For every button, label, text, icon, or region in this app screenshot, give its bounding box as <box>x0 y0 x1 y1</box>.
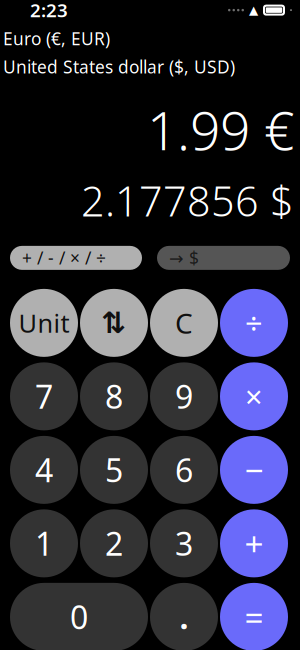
staticText: ▲ <box>249 3 258 17</box>
staticText: × <box>245 376 263 417</box>
button[interactable]: 9 <box>150 362 218 430</box>
staticText: 8 <box>105 375 123 418</box>
button[interactable]: × <box>220 362 288 430</box>
staticText: 5 <box>105 449 123 491</box>
button[interactable]: + / - / × / ÷ <box>10 246 142 270</box>
staticText: 7 <box>35 375 53 418</box>
staticText: . <box>179 596 188 638</box>
button[interactable]: 3 <box>150 509 218 577</box>
staticText: ÷ <box>245 302 263 343</box>
button[interactable]: ⇅ <box>80 289 148 357</box>
staticText: Euro (€, EUR) <box>3 27 110 50</box>
staticText: → $ <box>169 246 199 269</box>
staticText: 0 <box>70 596 88 638</box>
button[interactable]: Unit <box>10 289 78 357</box>
button[interactable]: ÷ <box>220 289 288 357</box>
staticText: 2.177856 $ <box>81 173 294 228</box>
button[interactable]: − <box>220 436 288 504</box>
button[interactable]: 5 <box>80 436 148 504</box>
staticText: 9 <box>175 375 193 418</box>
button[interactable]: = <box>220 583 288 650</box>
button[interactable]: + <box>220 509 288 577</box>
button[interactable]: C <box>150 289 218 357</box>
staticText: + / - / × / ÷ <box>22 246 106 269</box>
button[interactable]: 2 <box>80 509 148 577</box>
button[interactable]: → $ <box>157 246 290 270</box>
button[interactable]: 0 <box>10 583 148 650</box>
staticText: = <box>244 595 263 639</box>
staticText: 3 <box>175 522 193 565</box>
button[interactable]: . <box>150 583 218 650</box>
staticText: 6 <box>175 449 193 491</box>
staticText: 2 <box>105 522 123 565</box>
staticText: Unit <box>18 306 69 340</box>
button[interactable]: 6 <box>150 436 218 504</box>
staticText: 1 <box>35 522 53 565</box>
staticText: United States dollar ($, USD) <box>3 55 235 78</box>
staticText: − <box>244 448 263 492</box>
staticText: 1.99 € <box>147 94 294 165</box>
staticText: ⇅ <box>101 306 126 339</box>
button[interactable]: 1 <box>10 509 78 577</box>
staticText: 2:23 <box>30 0 68 22</box>
button[interactable]: 4 <box>10 436 78 504</box>
button[interactable]: 7 <box>10 362 78 430</box>
staticText: 4 <box>35 449 53 491</box>
button[interactable]: 8 <box>80 362 148 430</box>
staticText: C <box>175 304 193 341</box>
staticText: + <box>244 521 263 565</box>
